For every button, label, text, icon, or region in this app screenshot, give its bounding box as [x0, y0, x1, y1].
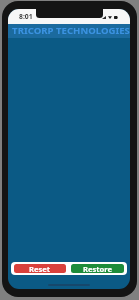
button[interactable]: Restore — [71, 264, 124, 273]
staticText: TRICORP TECHNOLOGIES — [12, 24, 130, 37]
button[interactable]: Reset — [14, 264, 66, 273]
staticText: 8:01 — [19, 12, 33, 21]
staticText: Restore — [83, 264, 113, 273]
staticText: Reset — [29, 264, 51, 273]
